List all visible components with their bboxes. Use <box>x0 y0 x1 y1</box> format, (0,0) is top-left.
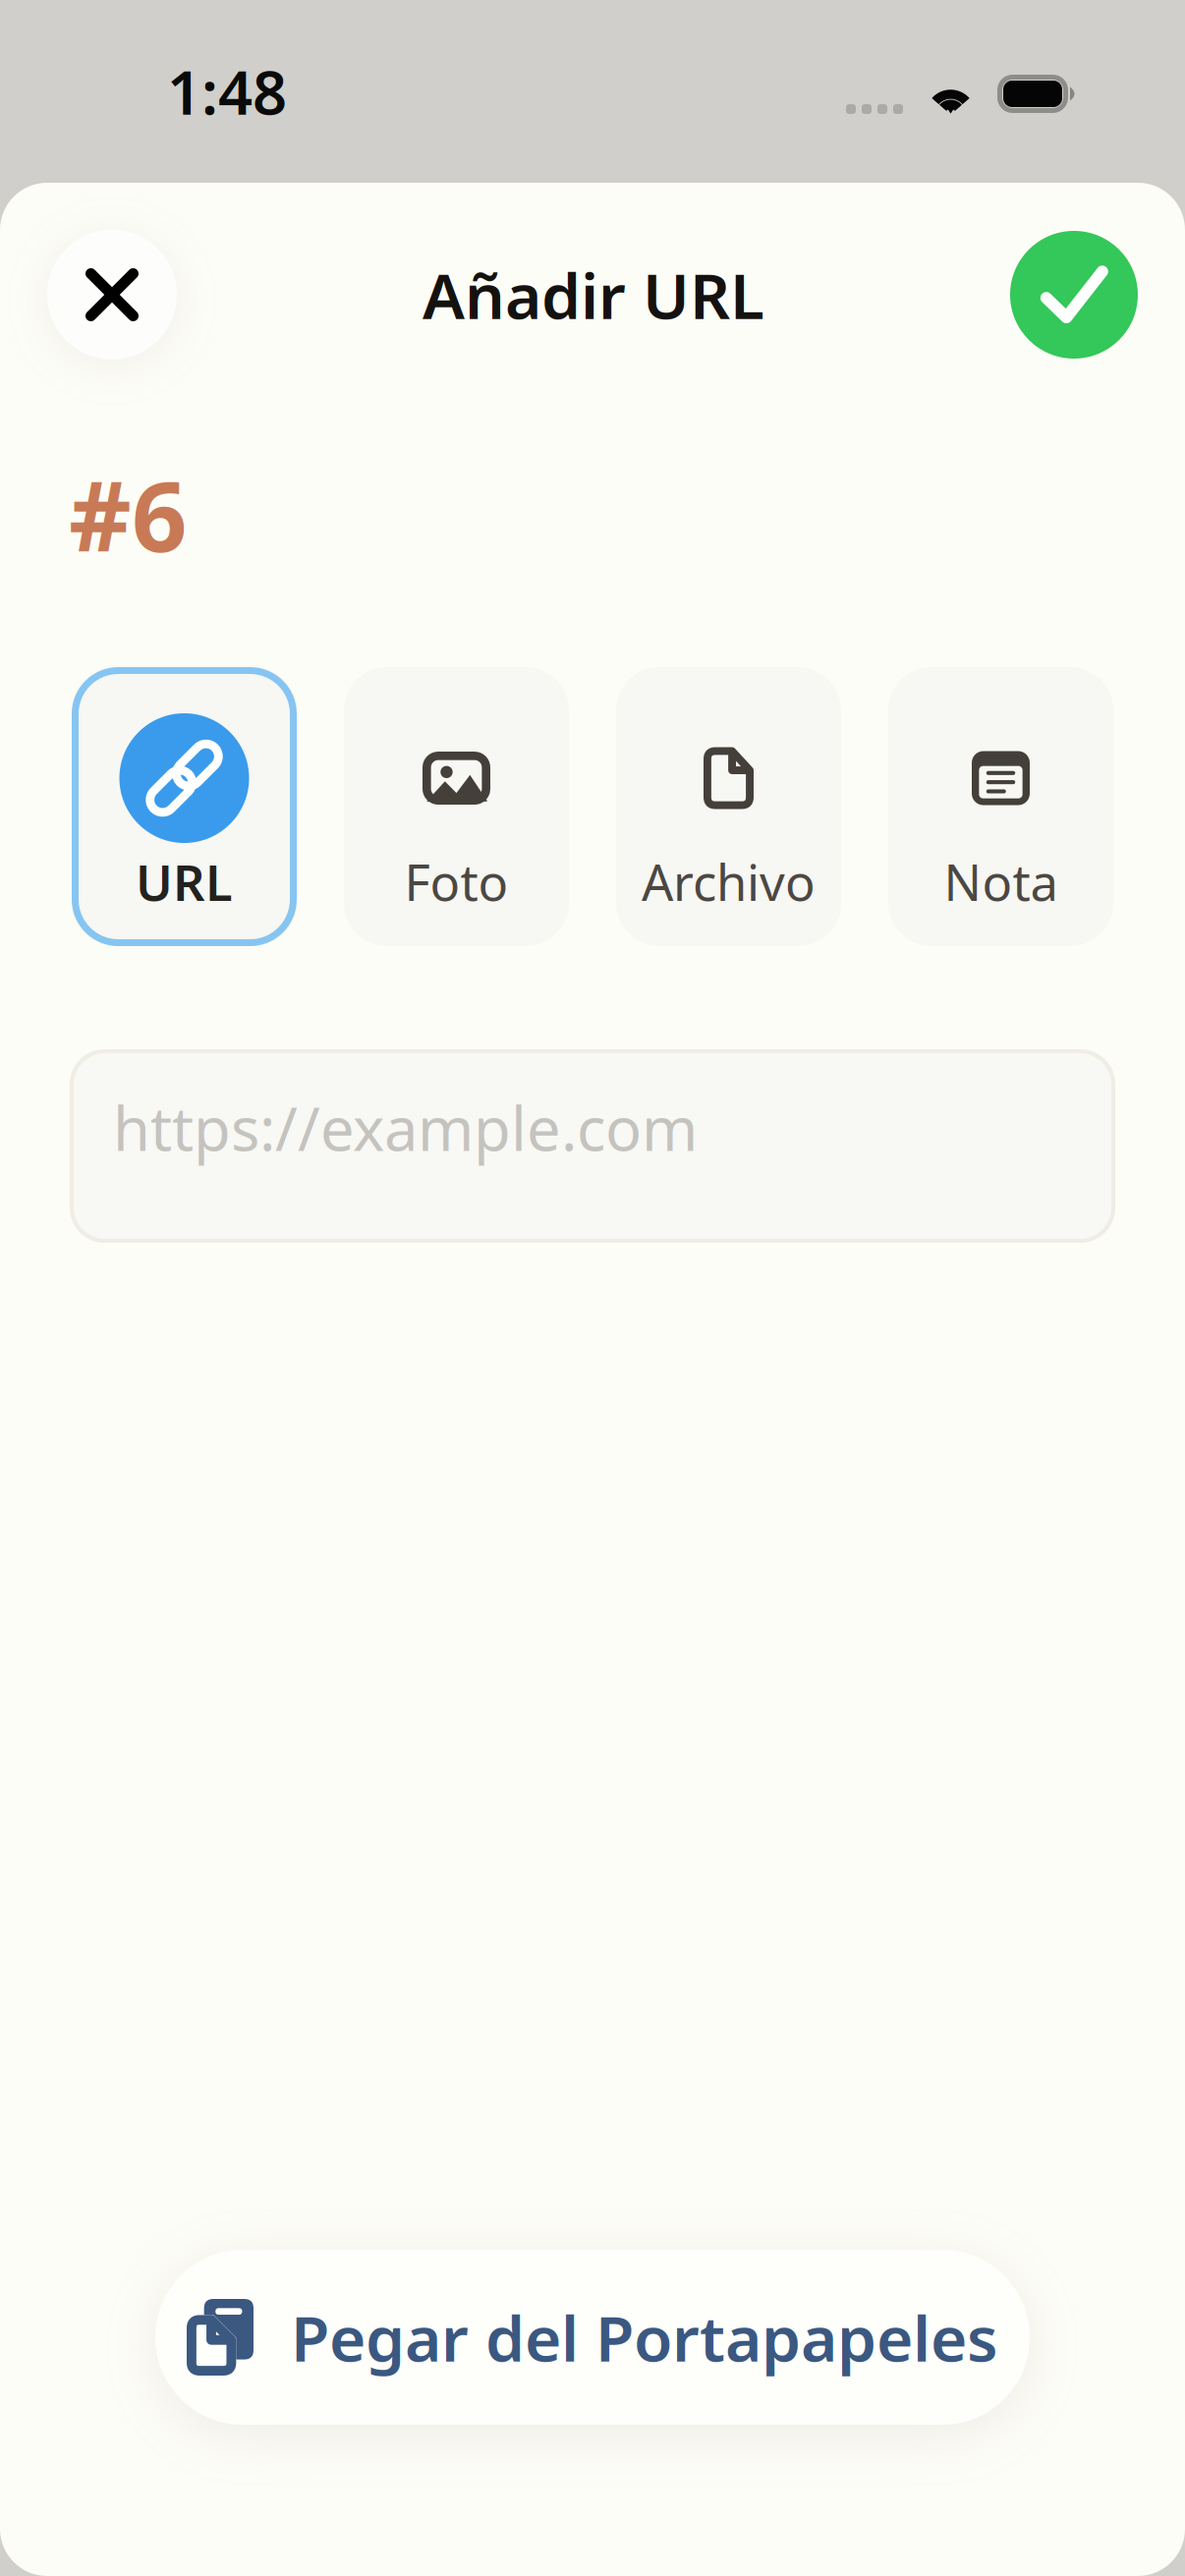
button[interactable]: Nota <box>888 667 1113 946</box>
button[interactable]: URL <box>72 667 297 946</box>
staticText: Foto <box>404 849 508 915</box>
staticText: Añadir URL <box>423 253 764 336</box>
staticText: Nota <box>944 849 1058 915</box>
button[interactable]: Archivo <box>616 667 841 946</box>
staticText: URL <box>136 849 233 915</box>
button[interactable]: Pegar del Portapapeles <box>155 2250 1030 2425</box>
staticText: Pegar del Portapapeles <box>291 2296 998 2379</box>
staticText: 1:48 <box>167 51 287 131</box>
button[interactable]: Foto <box>344 667 569 946</box>
staticText: https://example.com <box>113 1088 698 1168</box>
staticText: #6 <box>69 450 187 579</box>
staticText: Archivo <box>642 849 816 915</box>
button[interactable]: Cerrar <box>47 230 177 360</box>
button[interactable]: Guardar <box>1010 231 1138 359</box>
